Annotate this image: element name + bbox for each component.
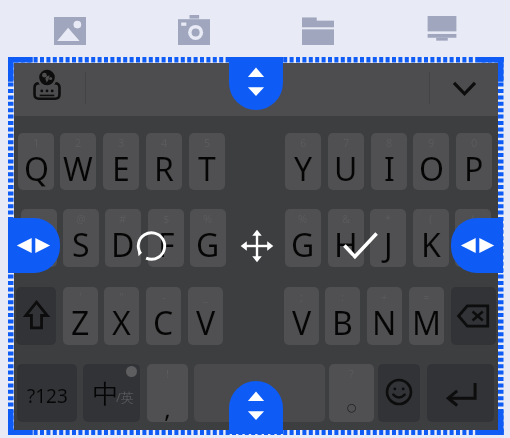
button[interactable]: ) [455,209,491,267]
button[interactable]: * [370,209,406,267]
staticText: U [334,147,358,190]
button[interactable] [378,364,420,422]
staticText: D [111,223,135,267]
staticText: Q [24,147,49,190]
staticText: ! [166,366,169,381]
staticText: W [63,147,93,190]
staticText: V [292,301,312,345]
button[interactable]: = [409,287,444,345]
staticText: E [112,147,130,190]
staticText: O [419,147,444,190]
button[interactable]: ? [329,364,374,422]
staticText: Y [294,147,313,190]
button[interactable]: ~ [21,209,57,267]
button[interactable]: 7 [328,133,364,190]
button[interactable]: ' [63,287,98,345]
staticText: T [198,147,216,190]
button[interactable]: 3 [103,133,139,190]
button[interactable]: ! [147,364,188,422]
button[interactable]: Emoji [386,379,412,405]
button[interactable]: 4 [146,133,182,190]
button[interactable]: Resize keyboard right [451,218,503,273]
button[interactable]: + [367,287,402,345]
staticText: S [72,223,90,267]
button[interactable]: & [328,209,364,267]
staticText: 4 [161,135,168,150]
staticText: G [291,223,315,267]
button[interactable] [16,287,56,345]
button[interactable]: 6 [285,133,321,190]
button[interactable]: 1 [18,133,54,190]
staticText: 5 [204,135,211,150]
staticText: J [384,223,393,267]
staticText: ) [471,211,475,226]
button[interactable]: " [104,287,139,345]
button[interactable] [427,364,494,422]
button[interactable] [83,364,140,422]
button[interactable]: 9 [413,133,449,190]
button[interactable]: Resize keyboard left [8,218,60,273]
button[interactable]: 5 [189,133,225,190]
button[interactable]: Shift [25,301,48,330]
button[interactable]: Switch language [93,378,133,410]
button[interactable]: Rotate [135,230,168,262]
staticText: L [465,223,482,267]
button[interactable]: % [285,209,321,267]
button[interactable]: _ [188,287,223,345]
staticText: R [154,147,174,190]
button[interactable]: Desktop [426,16,458,45]
button[interactable]: ; [284,287,319,345]
staticText: ~ [36,211,43,226]
button[interactable]: Resize keyboard bottom [229,381,283,434]
button[interactable]: ( [413,209,449,267]
staticText: Z [71,301,90,345]
button[interactable]: 8 [371,133,407,190]
button[interactable]: Change keyboard [34,70,60,99]
button[interactable]: 2 [60,133,96,190]
staticText: , [164,390,171,422]
staticText: 中 [93,378,119,410]
button[interactable]: Resize keyboard top [229,57,283,110]
button[interactable] [194,364,325,422]
button[interactable]: % [190,209,226,267]
button[interactable]: Camera [178,15,210,45]
button[interactable]: $ [148,209,184,267]
staticText: A [29,223,50,267]
button[interactable]: : [325,287,360,345]
button[interactable]: Gallery [54,17,86,45]
button[interactable] [451,287,496,345]
button[interactable]: - [146,287,181,345]
button[interactable]: Files [302,16,334,45]
button[interactable]: ?123 [17,364,77,422]
button[interactable]: Move keyboard [240,229,274,263]
button[interactable]: Enter [445,380,477,406]
button[interactable]: Hide keyboard [452,80,477,96]
staticText: & [342,211,351,226]
button[interactable]: 0 [456,133,492,190]
staticText: X [112,301,131,345]
button[interactable]: @ [63,209,99,267]
button[interactable]: Confirm [343,232,378,258]
staticText: K [421,223,441,267]
button[interactable]: Backspace [458,305,489,327]
button[interactable]: # [105,209,141,267]
staticText: C [153,301,174,345]
